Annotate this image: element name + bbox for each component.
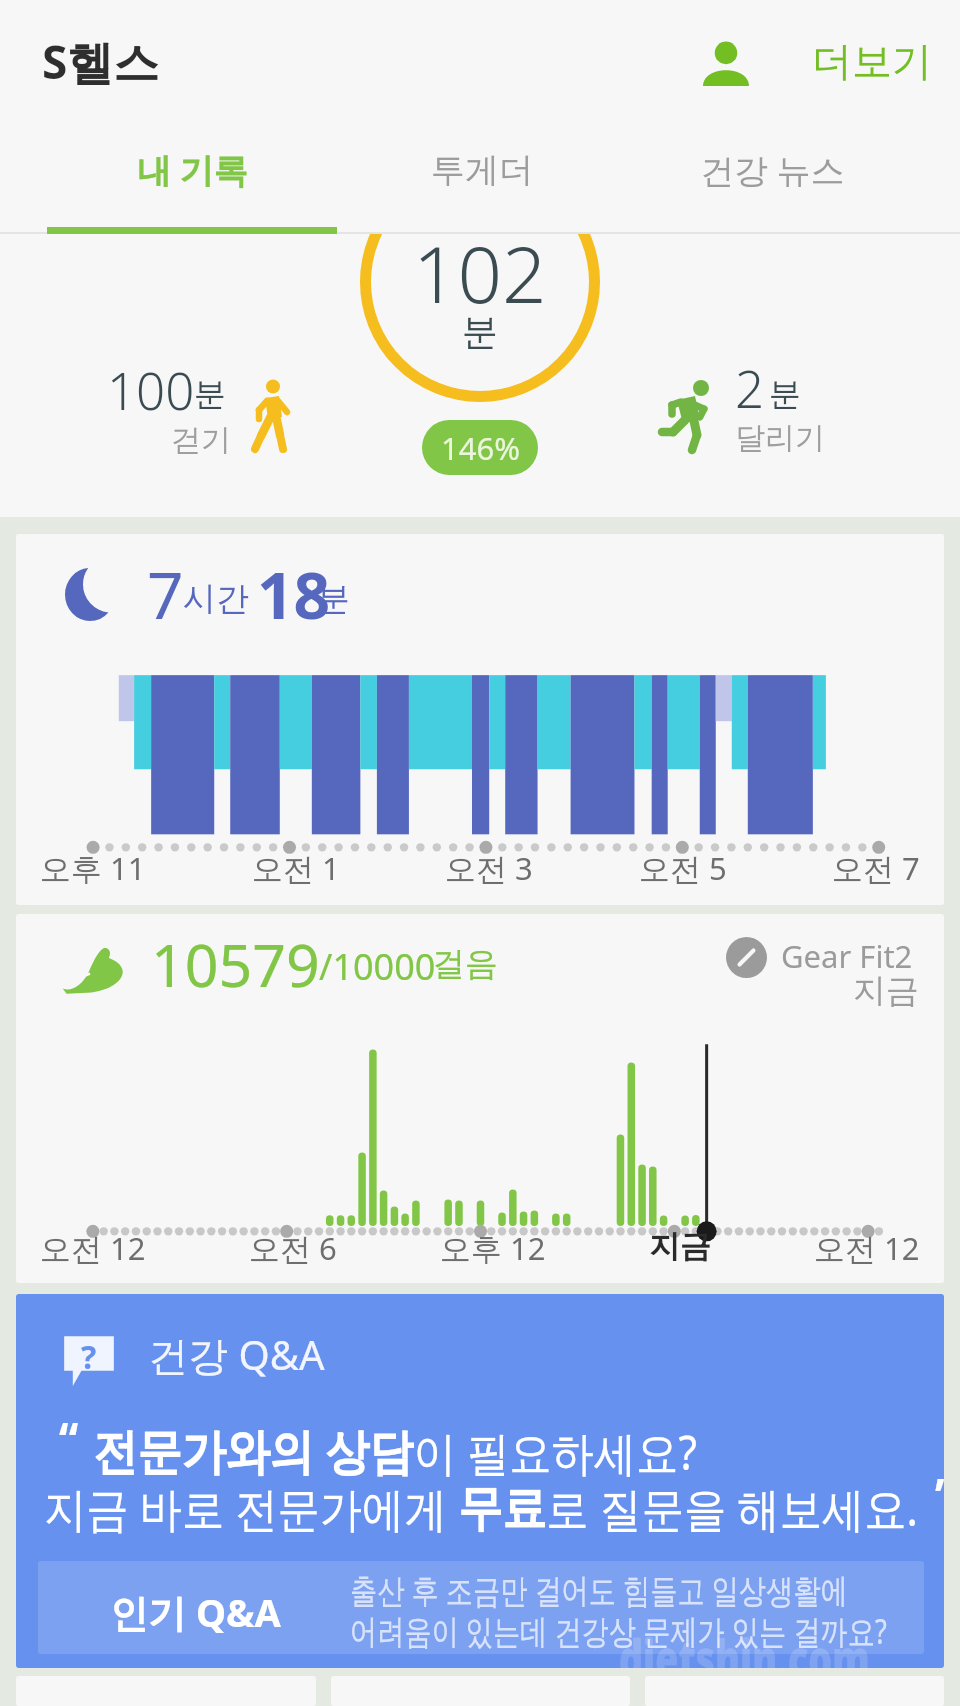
staticText: Gear Fit2 (781, 935, 913, 977)
staticText: 지금 바로 전문가에게 (44, 1476, 458, 1540)
staticText: 로 질문을 해보세요. (546, 1476, 919, 1540)
staticText: 오전 12 (40, 1227, 146, 1269)
button[interactable]: 투게더 (337, 118, 627, 234)
staticText: 달리기 (735, 419, 825, 457)
staticText: S헬스 (42, 30, 160, 93)
button[interactable]: ? (16, 1294, 944, 1668)
staticText: 오전 3 (445, 847, 533, 889)
button[interactable]: 102 (0, 234, 960, 517)
staticText: “ (59, 1407, 79, 1472)
staticText: 오전 1 (252, 847, 340, 889)
button[interactable]: Profile (678, 15, 774, 111)
staticText: 건강 Q&A (148, 1327, 325, 1382)
button[interactable]: 10579 (16, 914, 944, 1283)
staticText: dietshin.com (619, 1621, 870, 1668)
staticText: 지금 (649, 1227, 711, 1266)
staticText: 건강 뉴스 (700, 147, 845, 193)
staticText: 지금 (853, 970, 919, 1012)
staticText: 오후 12 (440, 1227, 546, 1269)
staticText: 분 (769, 374, 801, 414)
staticText: ? (81, 1335, 97, 1379)
staticText: 오전 7 (832, 847, 920, 889)
staticText: 걷기 (171, 421, 231, 459)
staticText: 오전 5 (639, 847, 727, 889)
staticText: 102 (413, 234, 547, 326)
staticText: ” (935, 1463, 944, 1528)
staticText: 7 (147, 551, 184, 638)
staticText: 오전 6 (249, 1227, 337, 1269)
staticText: 18 (257, 551, 331, 638)
staticText: 10579 (151, 924, 320, 1004)
staticText: 전문가와의 상담 (93, 1417, 414, 1484)
button[interactable]: 146% (422, 420, 538, 475)
staticText: 분 (317, 578, 350, 620)
staticText: 100 (107, 355, 195, 424)
staticText: 인기 Q&A (110, 1586, 281, 1638)
staticText: 투게더 (431, 149, 533, 192)
button[interactable]: 7 (16, 534, 944, 905)
staticText: 이 필요하세요? (414, 1420, 697, 1484)
button[interactable]: S헬스 (0, 18, 184, 105)
staticText: 오후 11 (40, 847, 146, 889)
staticText: 걸음 (432, 943, 498, 985)
staticText: 무료 (458, 1478, 546, 1540)
staticText: 오전 12 (814, 1227, 920, 1269)
button[interactable]: 더보기 (788, 20, 960, 102)
staticText: 2 (735, 353, 765, 422)
staticText: 분 (194, 374, 226, 414)
staticText: 내 기록 (137, 147, 248, 193)
staticText: /10000 (319, 942, 436, 991)
button[interactable]: 건강 뉴스 (627, 118, 917, 234)
button[interactable]: 내 기록 (47, 118, 337, 234)
staticText: 146% (441, 427, 520, 469)
staticText: 더보기 (812, 36, 932, 86)
staticText: 분 (462, 309, 498, 354)
staticText: 시간 (183, 578, 249, 620)
staticText: 출산 후 조금만 걸어도 힘들고 일상생활에 어려움이 있는데 건강상 문제가 … (350, 1567, 887, 1654)
button[interactable]: 인기 Q&A (38, 1561, 924, 1654)
